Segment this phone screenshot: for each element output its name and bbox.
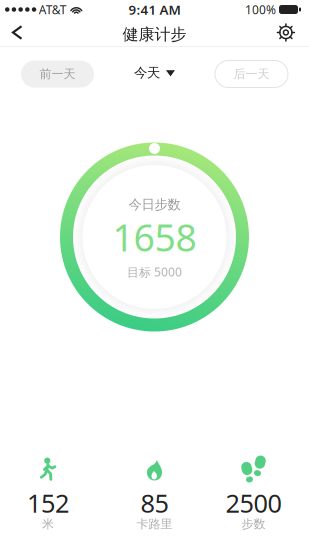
- button[interactable]: Settings: [276, 17, 309, 48]
- button[interactable]: 今天: [134, 65, 175, 81]
- staticText: 2500: [225, 486, 281, 520]
- staticText: 前一天: [39, 67, 75, 81]
- staticText: 9:41 AM: [128, 1, 180, 18]
- staticText: 后一天: [233, 67, 269, 81]
- staticText: 卡路里: [136, 517, 172, 531]
- staticText: 今天: [134, 65, 160, 81]
- staticText: 米: [42, 517, 54, 531]
- staticText: 目标 5000: [127, 264, 182, 280]
- staticText: AT&T: [39, 1, 67, 17]
- button[interactable]: 后一天: [215, 60, 288, 87]
- staticText: 1658: [112, 212, 196, 262]
- staticText: 85: [140, 486, 168, 520]
- staticText: 100%: [245, 1, 276, 17]
- button[interactable]: Back: [0, 19, 21, 46]
- staticText: 今日步数: [128, 196, 180, 213]
- staticText: 步数: [241, 517, 265, 531]
- staticText: 健康计步: [122, 25, 186, 44]
- button[interactable]: 前一天: [21, 60, 94, 87]
- staticText: 152: [27, 486, 69, 520]
